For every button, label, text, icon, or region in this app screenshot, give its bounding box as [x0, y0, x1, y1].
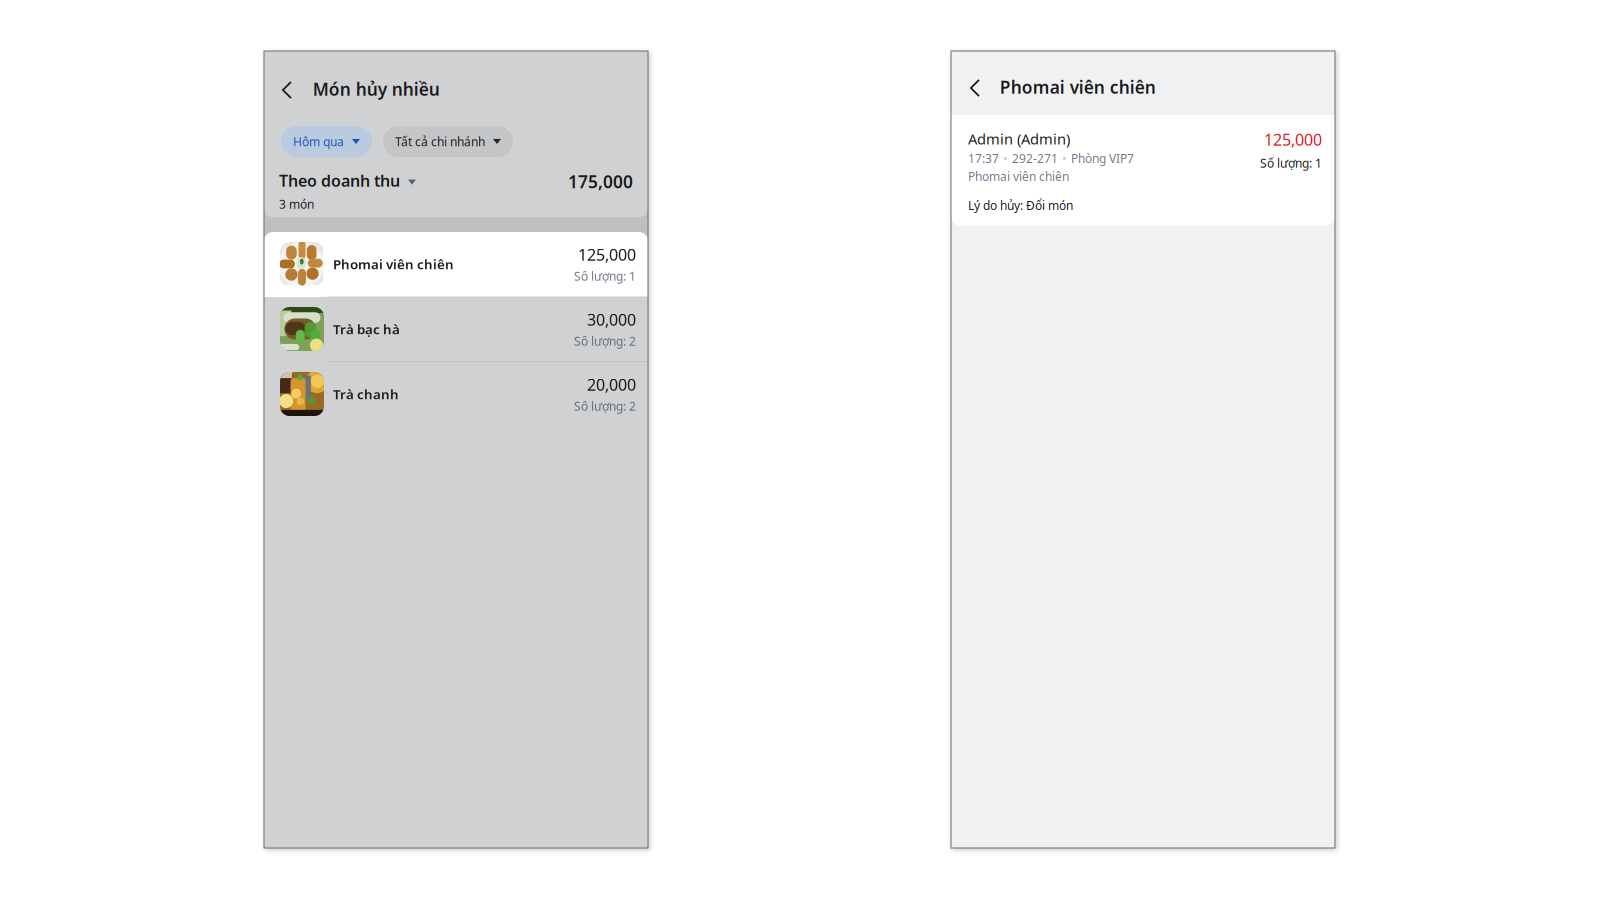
button[interactable]: Hôm qua — [281, 126, 372, 157]
button[interactable]: Trà bạc hà — [264, 297, 648, 361]
staticText: 30,000 — [587, 309, 636, 330]
button[interactable]: Phomai viên chiên — [264, 232, 648, 296]
staticText: Số lượng: 1 — [1260, 155, 1322, 171]
button[interactable]: Back — [963, 72, 986, 102]
staticText: Theo doanh thu — [279, 170, 400, 191]
staticText: 292-271 — [1012, 150, 1058, 166]
staticText: Phomai viên chiên — [333, 255, 454, 273]
staticText: Tất cả chi nhánh — [395, 133, 485, 149]
staticText: Hôm qua — [293, 133, 344, 149]
staticText: Số lượng: 2 — [574, 333, 636, 349]
staticText: Số lượng: 2 — [574, 398, 636, 414]
staticText: 125,000 — [1264, 129, 1322, 150]
staticText: Admin (Admin) — [968, 129, 1070, 148]
staticText: • — [1003, 150, 1008, 166]
button[interactable]: Theo doanh thu — [279, 170, 416, 191]
staticText: Phomai viên chiên — [1000, 75, 1156, 98]
staticText: Món hủy nhiều — [313, 77, 440, 100]
staticText: Trà bạc hà — [333, 320, 400, 338]
button[interactable]: Tất cả chi nhánh — [383, 126, 513, 157]
staticText: • — [1062, 150, 1067, 166]
staticText: Lý do hủy: Đổi món — [968, 197, 1073, 213]
button[interactable]: Back — [275, 74, 298, 104]
staticText: Số lượng: 1 — [574, 268, 636, 284]
staticText: Phòng VIP7 — [1071, 150, 1134, 166]
staticText: Phomai viên chiên — [968, 168, 1069, 184]
staticText: 17:37 — [968, 150, 999, 166]
staticText: 20,000 — [587, 374, 636, 395]
staticText: 175,000 — [568, 170, 633, 193]
staticText: Trà chanh — [333, 385, 399, 403]
staticText: 125,000 — [578, 244, 636, 265]
button[interactable]: Trà chanh — [264, 362, 648, 426]
staticText: 3 món — [279, 196, 314, 212]
